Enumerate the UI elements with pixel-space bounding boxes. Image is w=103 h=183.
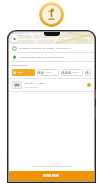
button[interactable]: More seats: [85, 69, 91, 76]
button[interactable]: Neeladri Nagar, Electronic City, Bengalu…: [9, 53, 94, 61]
staticText: You have to confirm by Tuesday 08:00 to …: [31, 165, 73, 168]
staticText: Bus/Van: [25, 82, 34, 85]
button[interactable]: 1 SEAT: [12, 69, 35, 76]
staticText: 1 SEAT: [17, 71, 23, 74]
staticText: KA01 AB1234 ›: [25, 86, 39, 89]
button[interactable]: 3 SEATS: [61, 69, 83, 76]
staticText: Whitefield, Electronic City Phase 1, Ele…: [19, 47, 91, 50]
staticText: Required Seats: [12, 64, 28, 67]
staticText: 2 SEATS: [45, 71, 52, 74]
button[interactable]: Whitefield, Electronic City Phase 1, Ele…: [9, 44, 94, 52]
button[interactable]: Bus/Van: [9, 79, 94, 91]
staticText: BOOK NOW: [43, 174, 60, 178]
button[interactable]: App logo: [39, 2, 64, 27]
staticText: Neeladri Nagar, Electronic City, Bengalu…: [19, 56, 91, 59]
button[interactable]: Back: [11, 35, 18, 42]
button[interactable]: BOOK NOW: [9, 171, 94, 181]
staticText: 7 Seats: [37, 82, 45, 85]
staticText: 3 SEATS: [72, 71, 79, 74]
other: Ride status: [87, 83, 91, 87]
button[interactable]: 2 SEATS: [37, 69, 59, 76]
